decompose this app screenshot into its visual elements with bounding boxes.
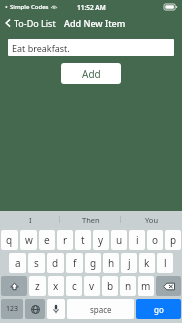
staticText: space <box>90 304 112 315</box>
button[interactable]: t <box>75 230 91 250</box>
button[interactable]: v <box>84 276 100 296</box>
button[interactable]: Dictation <box>47 299 65 319</box>
button[interactable]: space <box>67 299 134 319</box>
button[interactable]: I <box>0 211 60 228</box>
button[interactable]: f <box>66 253 83 273</box>
staticText: f <box>73 256 77 270</box>
staticText: l <box>164 256 167 270</box>
staticText: w <box>25 233 33 247</box>
staticText: c <box>72 279 77 293</box>
button[interactable]: u <box>111 230 127 250</box>
button[interactable]: a <box>9 253 26 273</box>
button[interactable]: Shift <box>1 276 27 296</box>
button[interactable]: o <box>147 230 163 250</box>
staticText: p <box>170 233 177 247</box>
button[interactable]: y <box>93 230 109 250</box>
staticText: h <box>108 256 115 270</box>
staticText: go <box>154 304 164 315</box>
staticText: x <box>53 279 59 293</box>
button[interactable]: Backspace <box>156 276 181 296</box>
staticText: u <box>116 233 123 247</box>
staticText: 11:52 AM <box>77 3 106 12</box>
button[interactable]: j <box>121 253 137 273</box>
staticText: m <box>141 279 151 293</box>
staticText: I <box>29 215 32 225</box>
button[interactable]: h <box>103 253 119 273</box>
button[interactable]: q <box>1 230 18 250</box>
staticText: a <box>15 256 21 270</box>
button[interactable]: You <box>121 211 182 228</box>
button[interactable]: c <box>66 276 82 296</box>
button[interactable]: p <box>165 230 181 250</box>
button[interactable]: To-Do List <box>5 17 56 29</box>
button[interactable]: go <box>136 299 181 319</box>
button[interactable]: i <box>129 230 145 250</box>
staticText: n <box>125 279 132 293</box>
button[interactable]: b <box>102 276 118 296</box>
staticText: Eat breakfast. <box>12 42 70 54</box>
button[interactable]: s <box>28 253 45 273</box>
button[interactable]: k <box>139 253 155 273</box>
button[interactable]: e <box>39 230 55 250</box>
staticText: o <box>152 233 159 247</box>
staticText: r <box>63 233 68 247</box>
staticText: g <box>90 256 97 270</box>
staticText: Then <box>82 215 100 225</box>
button[interactable]: 123 <box>1 299 23 319</box>
staticText: 123 <box>6 304 19 314</box>
staticText: i <box>136 233 139 247</box>
button[interactable]: Add <box>61 63 121 84</box>
staticText: Add New Item <box>64 17 126 29</box>
button[interactable]: m <box>138 276 154 296</box>
staticText: Simple Codes <box>10 3 49 11</box>
staticText: You <box>145 215 159 225</box>
button[interactable]: Then <box>60 211 121 228</box>
staticText: s <box>34 256 39 270</box>
staticText: d <box>52 256 59 270</box>
button[interactable]: Eat breakfast. <box>8 39 174 56</box>
button[interactable]: g <box>85 253 101 273</box>
staticText: q <box>6 233 13 247</box>
staticText: To-Do List <box>14 17 56 29</box>
button[interactable]: d <box>47 253 64 273</box>
button[interactable]: w <box>20 230 37 250</box>
staticText: t <box>81 233 85 247</box>
staticText: e <box>44 233 50 247</box>
button[interactable]: n <box>120 276 136 296</box>
staticText: k <box>144 256 150 270</box>
button[interactable]: x <box>48 276 64 296</box>
staticText: j <box>128 256 131 270</box>
staticText: Add <box>82 67 101 81</box>
staticText: y <box>98 233 104 247</box>
button[interactable]: z <box>29 276 46 296</box>
staticText: v <box>89 279 95 293</box>
button[interactable]: l <box>157 253 173 273</box>
button[interactable]: r <box>57 230 73 250</box>
staticText: z <box>35 279 40 293</box>
staticText: b <box>107 279 114 293</box>
button[interactable]: Switch keyboard <box>25 299 45 319</box>
